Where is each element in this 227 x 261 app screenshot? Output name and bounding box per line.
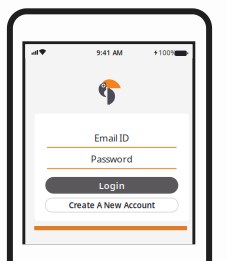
staticText: Create A New Account bbox=[69, 200, 155, 210]
button[interactable]: Password bbox=[47, 152, 177, 169]
staticText: Password bbox=[91, 153, 133, 165]
button[interactable]: Email ID bbox=[47, 131, 177, 148]
staticText: Email ID bbox=[94, 132, 129, 144]
staticText: 100% bbox=[158, 48, 176, 57]
button[interactable]: Create A New Account bbox=[45, 198, 178, 212]
staticText: 9:41 AM bbox=[97, 48, 123, 57]
staticText: Login bbox=[99, 179, 125, 191]
button[interactable]: Login bbox=[45, 177, 178, 194]
